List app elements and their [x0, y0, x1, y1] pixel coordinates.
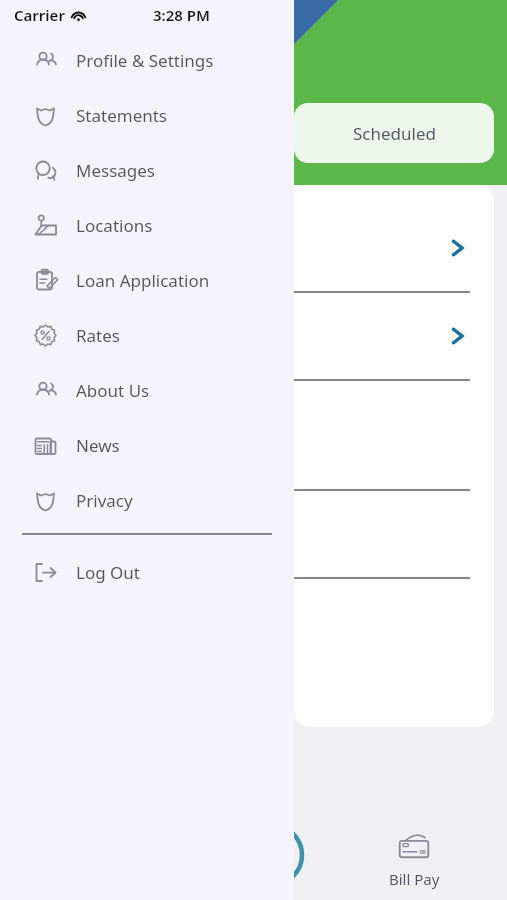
button[interactable]: Account row	[294, 204, 494, 292]
staticText: About Us	[76, 379, 150, 402]
button[interactable]: Messages	[0, 143, 294, 198]
staticText: Rates	[76, 324, 120, 347]
staticText: Bill Pay	[389, 869, 440, 889]
button[interactable]: About Us	[0, 363, 294, 418]
button[interactable]: News	[0, 418, 294, 473]
staticText: Locations	[76, 214, 153, 237]
button[interactable]: Bill Pay	[374, 830, 454, 894]
staticText: Loan Application	[76, 269, 210, 292]
button[interactable]: Profile & Settings	[0, 33, 294, 88]
button[interactable]: Statements	[0, 88, 294, 143]
button[interactable]: Loan Application	[0, 253, 294, 308]
button[interactable]: Account row	[294, 292, 494, 380]
button[interactable]: Locations	[0, 198, 294, 253]
staticText: News	[76, 434, 120, 457]
button[interactable]: Rates	[0, 308, 294, 363]
staticText: Statements	[76, 104, 168, 127]
staticText: Scheduled	[353, 122, 436, 145]
staticText: Carrier	[14, 5, 65, 25]
staticText: Log Out	[76, 561, 140, 584]
staticText: Privacy	[76, 489, 133, 512]
button[interactable]: Log Out	[0, 545, 294, 600]
staticText: Messages	[76, 159, 156, 182]
button[interactable]: Privacy	[0, 473, 294, 528]
staticText: 3:28 PM	[153, 5, 210, 25]
button[interactable]: Scheduled	[294, 103, 494, 163]
staticText: Profile & Settings	[76, 49, 214, 72]
